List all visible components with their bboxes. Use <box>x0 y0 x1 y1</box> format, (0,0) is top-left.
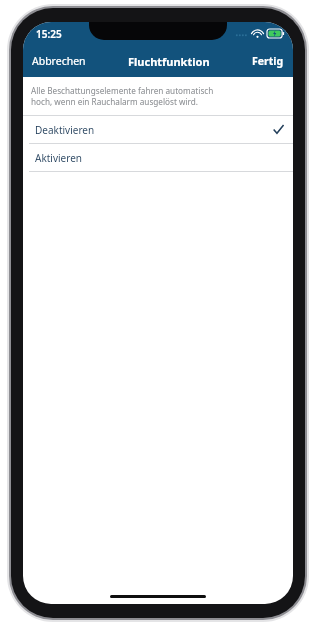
other: Ausgewählt <box>273 124 284 135</box>
other: WLAN <box>252 28 263 39</box>
other: Batterie lädt <box>267 29 285 38</box>
staticText: Aktivieren <box>35 151 82 165</box>
button[interactable]: Aktivieren <box>23 144 293 171</box>
staticText: Abbrechen <box>32 54 86 68</box>
staticText: Fertig <box>252 54 284 68</box>
button[interactable]: Deaktivieren <box>23 116 293 143</box>
staticText: Alle Beschattungselemente fahren automat… <box>31 85 214 107</box>
staticText: Deaktivieren <box>35 123 95 137</box>
staticText: 15:25 <box>36 27 62 41</box>
button[interactable]: Abbrechen <box>23 49 95 73</box>
staticText: Fluchtfunktion <box>128 54 210 69</box>
button[interactable]: Fertig <box>243 49 293 73</box>
